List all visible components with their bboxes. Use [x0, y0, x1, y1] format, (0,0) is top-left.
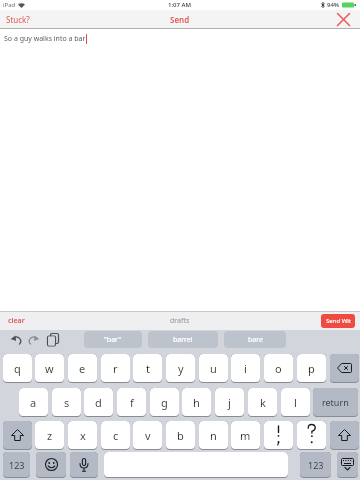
staticText: bare [248, 335, 263, 345]
button[interactable] [36, 452, 66, 478]
staticText: p [308, 361, 315, 376]
button[interactable] [297, 421, 326, 450]
staticText: x [80, 428, 86, 443]
button[interactable] [104, 452, 288, 478]
button[interactable]: q [3, 354, 32, 383]
button[interactable]: m [231, 421, 260, 450]
button[interactable]: w [35, 354, 64, 383]
button[interactable] [70, 452, 98, 478]
button[interactable] [47, 333, 60, 347]
button[interactable]: u [199, 354, 228, 383]
button[interactable]: r [101, 354, 130, 383]
button[interactable] [337, 452, 358, 478]
button[interactable]: e [68, 354, 97, 383]
button[interactable]: j [215, 388, 244, 417]
staticText: h [193, 395, 200, 410]
button[interactable] [330, 354, 359, 383]
staticText: e [79, 361, 86, 376]
button[interactable]: g [150, 388, 179, 417]
staticText: t [146, 361, 150, 376]
button[interactable]: x [68, 421, 97, 450]
staticText: iPad [3, 1, 16, 9]
staticText: return [322, 396, 349, 408]
staticText: k [260, 395, 266, 410]
button[interactable]: s [52, 388, 81, 417]
staticText: r [113, 361, 118, 376]
staticText: w [45, 361, 54, 376]
staticText: j [228, 395, 231, 410]
button[interactable]: c [101, 421, 130, 450]
staticText: g [161, 395, 168, 410]
staticText: d [95, 395, 102, 410]
staticText: o [275, 361, 282, 376]
staticText: b [177, 428, 184, 443]
button[interactable]: "bar" [84, 331, 142, 348]
button[interactable] [337, 13, 350, 26]
button[interactable]: i [231, 354, 260, 383]
staticText: "bar" [104, 335, 122, 345]
button[interactable]: o [264, 354, 293, 383]
button[interactable]: b [166, 421, 195, 450]
button[interactable]: y [166, 354, 195, 383]
button[interactable]: n [199, 421, 228, 450]
button[interactable]: h [182, 388, 211, 417]
button[interactable]: l [281, 388, 310, 417]
staticText: 123 [9, 459, 25, 471]
staticText: a [30, 395, 37, 410]
button[interactable]: 123 [3, 452, 30, 478]
button[interactable]: return [313, 388, 358, 417]
button[interactable] [330, 421, 359, 450]
staticText: f [130, 395, 134, 410]
staticText: l [294, 395, 297, 410]
staticText: v [145, 428, 151, 443]
button[interactable]: v [133, 421, 162, 450]
button[interactable]: p [297, 354, 326, 383]
staticText: i [244, 361, 247, 376]
staticText: y [178, 361, 184, 376]
button[interactable]: k [248, 388, 277, 417]
staticText: 1:07 AM [168, 1, 192, 9]
button[interactable]: bare [224, 331, 286, 348]
button[interactable]: z [35, 421, 64, 450]
staticText: u [210, 361, 217, 376]
staticText: s [64, 395, 70, 410]
staticText: n [210, 428, 217, 443]
button[interactable]: f [117, 388, 146, 417]
button[interactable] [264, 421, 293, 450]
staticText: Stuck? [6, 14, 30, 25]
staticText: q [14, 361, 21, 376]
button[interactable]: t [133, 354, 162, 383]
button[interactable] [3, 421, 32, 450]
staticText: clear [8, 316, 25, 326]
button[interactable]: Send Wit [321, 314, 355, 328]
button[interactable] [28, 334, 40, 346]
staticText: m [240, 428, 251, 443]
button[interactable]: 123 [300, 452, 331, 478]
button[interactable]: Send [170, 14, 190, 25]
staticText: drafts [170, 316, 190, 326]
button[interactable]: Stuck? [6, 14, 30, 25]
staticText: z [47, 428, 53, 443]
button[interactable]: d [84, 388, 113, 417]
button[interactable]: barrel [148, 331, 218, 348]
button[interactable]: clear [8, 316, 25, 326]
staticText: 123 [308, 459, 324, 471]
staticText: So a guy walks into a bar [4, 34, 86, 44]
staticText: 94% [327, 1, 340, 9]
staticText: c [113, 428, 119, 443]
staticText: Send Wit [326, 317, 351, 325]
button[interactable] [10, 334, 22, 346]
staticText: barrel [173, 335, 193, 345]
button[interactable]: a [19, 388, 48, 417]
staticText: Send [170, 14, 190, 25]
